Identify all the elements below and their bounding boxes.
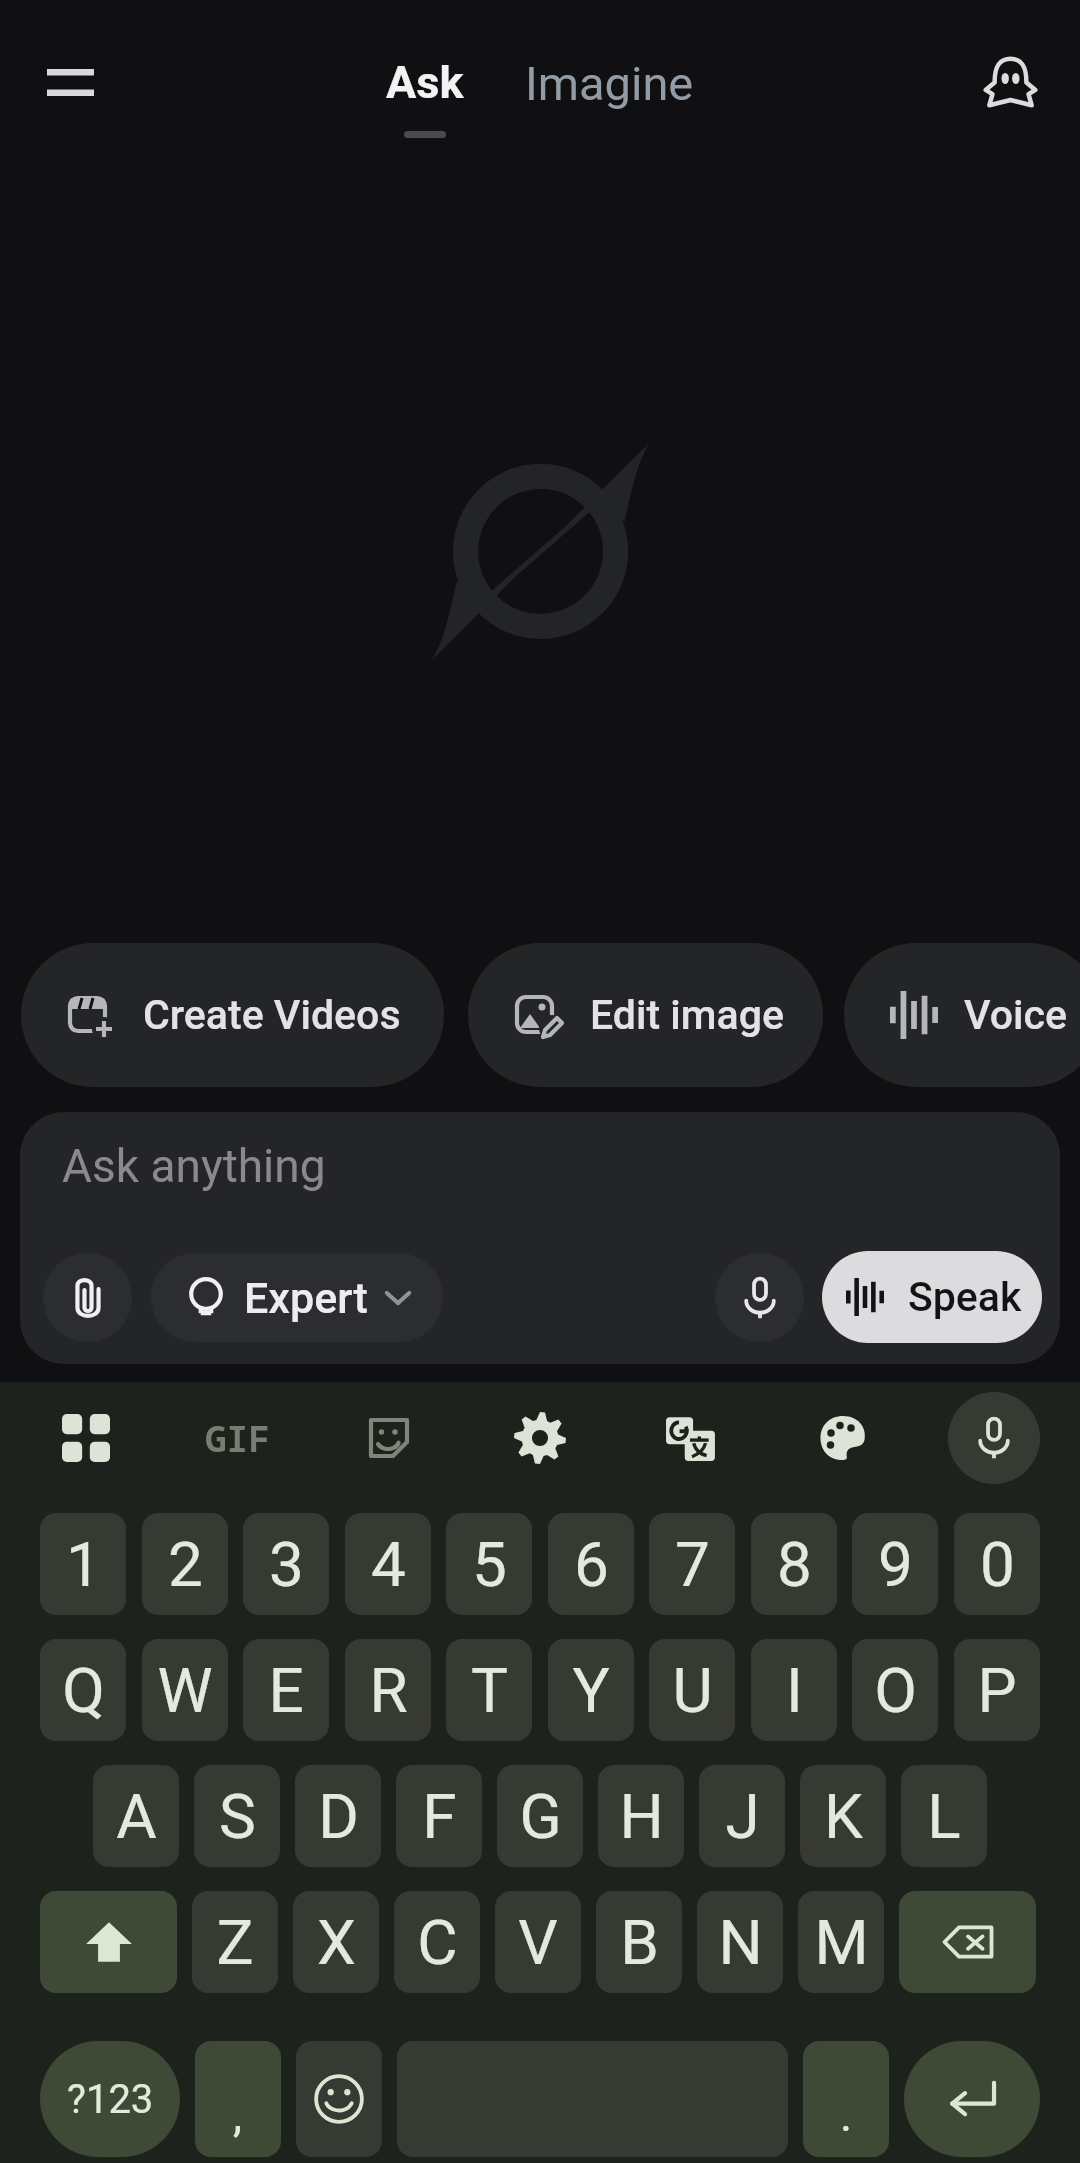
staticText: L [927,1780,961,1853]
staticText: Y [572,1654,610,1727]
button[interactable]: U [649,1639,735,1741]
button[interactable]: ?123 [40,2041,180,2157]
button[interactable]: 4 [345,1513,431,1615]
button[interactable]: Menu [20,32,120,132]
button[interactable]: 1 [40,1513,126,1615]
button[interactable]: O [852,1639,938,1741]
staticText: V [518,1906,558,1979]
button[interactable]: I [751,1639,837,1741]
staticText: 0 [980,1528,1015,1601]
staticText: 1 [66,1528,101,1601]
staticText: Ask [386,56,464,109]
button[interactable]: Settings [494,1392,586,1484]
button[interactable]: Edit image [468,943,823,1087]
button[interactable]: Translate [645,1392,737,1484]
staticText: X [317,1906,356,1979]
button[interactable]: Voice Mode [844,943,1080,1087]
button[interactable]: 7 [649,1513,735,1615]
button[interactable]: V [495,1891,581,1993]
button[interactable]: Incognito [960,32,1060,132]
staticText: O [874,1654,917,1727]
staticText: Create Videos [143,991,401,1039]
staticText: ?123 [67,2076,154,2123]
staticText: 7 [675,1528,710,1601]
button[interactable]: J [699,1765,785,1867]
button[interactable]: 3 [243,1513,329,1615]
button[interactable]: Ask [368,56,482,138]
button[interactable]: Speak [822,1251,1042,1343]
button[interactable]: Y [548,1639,634,1741]
staticText: . [840,2088,853,2142]
button[interactable]: X [293,1891,379,1993]
staticText: N [718,1906,763,1979]
staticText: Ask anything [62,1139,326,1193]
staticText: Expert [244,1273,368,1323]
button[interactable]: D [295,1765,381,1867]
staticText: 6 [574,1528,609,1601]
button[interactable]: G [497,1765,583,1867]
button[interactable]: 0 [954,1513,1040,1615]
button[interactable]: Theme [797,1392,889,1484]
staticText: D [318,1780,359,1853]
staticText: M [814,1906,869,1979]
button[interactable]: Imagine [505,56,714,111]
button[interactable]: Enter [904,2041,1040,2157]
button[interactable]: Create Videos [21,943,444,1087]
button[interactable]: Expert [151,1253,443,1342]
button[interactable]: K [800,1765,886,1867]
button[interactable]: Voice input [948,1392,1040,1484]
staticText: I [786,1654,803,1727]
button[interactable]: L [901,1765,987,1867]
button[interactable]: T [446,1639,532,1741]
button[interactable]: Sticker [343,1392,435,1484]
button[interactable]: , [195,2041,281,2157]
button[interactable]: P [954,1639,1040,1741]
button[interactable]: Attach file [43,1253,132,1342]
button[interactable]: 9 [852,1513,938,1615]
button[interactable]: Microphone [715,1253,804,1342]
button[interactable]: E [243,1639,329,1741]
staticText: U [672,1654,713,1727]
staticText: 5 [472,1528,507,1601]
staticText: Imagine [525,56,694,111]
button[interactable]: Apps [40,1392,132,1484]
button[interactable]: Backspace [899,1891,1036,1993]
button[interactable]: Ask anything [20,1112,1060,1364]
staticText: S [219,1780,256,1853]
staticText: G [519,1780,562,1853]
staticText: Speak [908,1273,1022,1321]
button[interactable]: Q [40,1639,126,1741]
button[interactable]: R [345,1639,431,1741]
staticText: A [116,1780,157,1853]
button[interactable]: GIF [191,1392,283,1484]
button[interactable]: C [394,1891,480,1993]
button[interactable]: M [798,1891,884,1993]
staticText: 8 [777,1528,812,1601]
staticText: W [157,1654,213,1727]
staticText: 9 [878,1528,913,1601]
button[interactable]: Shift [40,1891,177,1993]
button[interactable]: W [142,1639,228,1741]
staticText: F [422,1780,457,1853]
staticText: Edit image [590,991,784,1039]
button[interactable]: 6 [548,1513,634,1615]
staticText: 4 [371,1528,406,1601]
button[interactable]: Emoji [296,2041,382,2157]
button[interactable]: 2 [142,1513,228,1615]
staticText: E [268,1654,304,1727]
button[interactable]: B [596,1891,682,1993]
staticText: B [620,1906,659,1979]
staticText: C [417,1906,458,1979]
button[interactable]: F [396,1765,482,1867]
button[interactable]: A [93,1765,179,1867]
button[interactable]: H [598,1765,684,1867]
button[interactable]: S [194,1765,280,1867]
button[interactable]: 8 [751,1513,837,1615]
staticText: K [824,1780,863,1853]
button[interactable]: 5 [446,1513,532,1615]
button[interactable]: N [697,1891,783,1993]
staticText: 2 [168,1528,203,1601]
button[interactable]: Z [192,1891,278,1993]
button[interactable]: . [803,2041,889,2157]
